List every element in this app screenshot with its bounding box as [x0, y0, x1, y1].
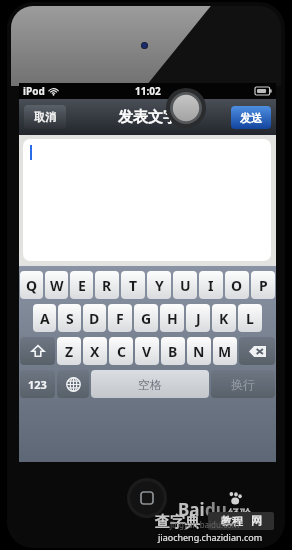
staticText: 发表文字 [118, 108, 178, 127]
staticText: F [116, 309, 124, 328]
button[interactable]: 发送 [231, 106, 271, 129]
staticText: 网 [251, 514, 262, 528]
staticText: X [90, 342, 100, 361]
button[interactable]: O [225, 271, 249, 299]
button[interactable]: L [238, 304, 262, 332]
button[interactable]: N [187, 337, 211, 365]
button[interactable]: F [108, 304, 132, 332]
button[interactable]: B [161, 337, 185, 365]
button[interactable]: U [173, 271, 197, 299]
staticText: C [117, 342, 126, 361]
staticText: 查字典 [155, 513, 200, 532]
staticText: 发送 [240, 111, 262, 125]
staticText: J [196, 309, 201, 328]
staticText: Bai [178, 498, 205, 521]
button[interactable]: J [186, 304, 210, 332]
staticText: G [141, 309, 152, 328]
staticText: Y [155, 276, 164, 295]
button[interactable]: W [45, 271, 68, 299]
staticText: I [208, 276, 214, 295]
staticText: O [231, 276, 243, 295]
staticText: T [129, 276, 138, 295]
staticText: U [180, 276, 191, 295]
staticText: D [89, 309, 100, 328]
staticText: M [218, 342, 232, 361]
button[interactable]: E [70, 271, 93, 299]
staticText: R [102, 276, 112, 295]
button[interactable]: V [135, 337, 159, 365]
button[interactable]: T [121, 271, 145, 299]
staticText: S [66, 309, 74, 328]
button[interactable]: Y [147, 271, 171, 299]
staticText: B [168, 342, 178, 361]
staticText: H [167, 309, 178, 328]
staticText: L [246, 309, 254, 328]
button[interactable]: A [33, 304, 56, 332]
button[interactable]: C [109, 337, 133, 365]
staticText: du [205, 498, 227, 521]
button[interactable]: Switch keyboard [57, 370, 89, 398]
button[interactable]: G [134, 304, 158, 332]
staticText: E [78, 276, 86, 295]
staticText: 经验 [228, 506, 252, 521]
other: Home [127, 478, 167, 518]
staticText: 123 [28, 377, 47, 392]
button[interactable]: 换行 [211, 370, 275, 398]
button[interactable]: M [213, 337, 237, 365]
button[interactable]: 空格 [91, 370, 209, 398]
staticText: Q [26, 276, 38, 295]
staticText: P [259, 276, 268, 295]
button[interactable]: Delete [239, 337, 275, 365]
button[interactable]: X [83, 337, 107, 365]
staticText: 11:02 [135, 84, 161, 98]
staticText: jiaocheng.chazidian.com [158, 531, 263, 543]
staticText: A [40, 309, 50, 328]
staticText: 换行 [231, 377, 255, 392]
button[interactable]: R [95, 271, 119, 299]
button[interactable]: H [160, 304, 184, 332]
button[interactable]: Z [57, 337, 81, 365]
staticText: 空格 [138, 377, 162, 392]
button[interactable]: S [58, 304, 81, 332]
button[interactable]: Q [20, 271, 43, 299]
staticText: K [219, 309, 229, 328]
staticText: W [50, 276, 64, 295]
button[interactable]: P [251, 271, 275, 299]
button[interactable]: 123 [20, 370, 55, 398]
staticText: Z [65, 342, 74, 361]
button[interactable]: Shift [20, 337, 55, 365]
button[interactable]: 取消 [24, 105, 66, 129]
staticText: jingyan.baidu.com [170, 519, 240, 530]
staticText: 取消 [34, 110, 56, 124]
staticText: V [142, 342, 152, 361]
button[interactable]: K [212, 304, 236, 332]
staticText: N [193, 342, 205, 361]
button[interactable] [23, 139, 271, 261]
button[interactable]: I [199, 271, 223, 299]
button[interactable]: D [83, 304, 106, 332]
staticText: 教程 [221, 514, 243, 528]
staticText: iPod [23, 84, 45, 98]
